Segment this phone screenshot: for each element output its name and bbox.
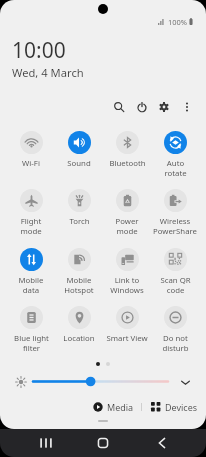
button[interactable]: Settings [155, 98, 173, 116]
button[interactable]: Auto rotate [151, 131, 199, 178]
button[interactable] [28, 374, 173, 389]
button[interactable]: Recents [35, 432, 57, 454]
button[interactable]: Devices [149, 401, 200, 413]
button[interactable]: Power mode [103, 189, 151, 236]
button[interactable]: Torch [55, 189, 103, 227]
staticText: Devices [165, 401, 198, 413]
staticText: Smart View [106, 333, 148, 344]
staticText: Sound [67, 158, 91, 169]
button[interactable]: Smart View [103, 306, 151, 344]
staticText: Torch [69, 216, 90, 227]
staticText: Bluetooth [109, 158, 146, 169]
staticText: Scan QR code [160, 275, 191, 295]
staticText: 100% [168, 17, 188, 27]
staticText: Wireless PowerShare [153, 216, 197, 236]
button[interactable]: Scan QR code [151, 248, 199, 295]
staticText: Location [63, 333, 95, 344]
staticText: Media [107, 401, 134, 413]
button[interactable]: Do not disturb [151, 306, 199, 353]
button[interactable]: Wi-Fi [7, 131, 55, 169]
button[interactable]: Home [92, 432, 114, 454]
button[interactable]: Back [151, 432, 173, 454]
button[interactable]: Brightness [13, 374, 28, 389]
button[interactable]: Sound [55, 131, 103, 169]
button[interactable]: Power [133, 98, 151, 116]
staticText: Do not disturb [162, 333, 189, 353]
staticText: Link to Windows [110, 275, 144, 295]
button[interactable]: Mobile Hotspot [55, 248, 103, 295]
button[interactable]: Link to Windows [103, 248, 151, 295]
button[interactable]: Location [55, 306, 103, 344]
button[interactable]: Blue light filter [7, 306, 55, 353]
button[interactable]: Media [91, 401, 136, 413]
staticText: Mobile Hotspot [64, 275, 94, 295]
button[interactable]: Wireless PowerShare [151, 189, 199, 236]
button[interactable]: Search [110, 98, 128, 116]
staticText: 10:00 [12, 36, 66, 65]
button[interactable]: Mobile data [7, 248, 55, 295]
staticText: Auto rotate [164, 158, 187, 178]
staticText: Power mode [115, 216, 139, 236]
staticText: Mobile data [18, 275, 44, 295]
staticText: Flight mode [20, 216, 42, 236]
button[interactable]: Flight mode [7, 189, 55, 236]
staticText: Wi-Fi [22, 158, 40, 169]
button[interactable]: Bluetooth [103, 131, 151, 169]
staticText: Blue light filter [14, 333, 49, 353]
button[interactable]: Expand brightness [177, 374, 193, 390]
button[interactable]: More options [178, 98, 196, 116]
staticText: Wed, 4 March [12, 65, 84, 80]
